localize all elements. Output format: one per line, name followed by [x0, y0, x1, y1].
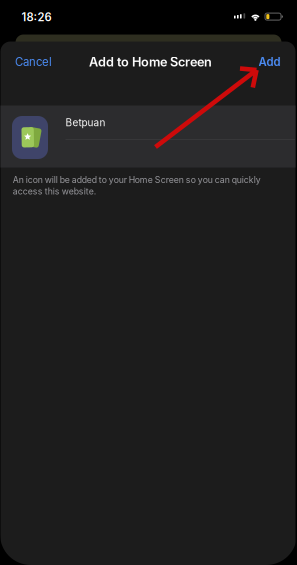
staticText: An icon will be added to your Home Scree… [13, 174, 261, 196]
button[interactable]: Add [220, 54, 295, 69]
staticText: Cancel [15, 55, 52, 69]
staticText: Betpuan [65, 116, 105, 129]
staticText: Add [258, 55, 280, 69]
button[interactable]: Cancel [0, 54, 89, 69]
staticText: 18:26 [21, 10, 51, 24]
staticText: Add to Home Screen [89, 54, 212, 70]
